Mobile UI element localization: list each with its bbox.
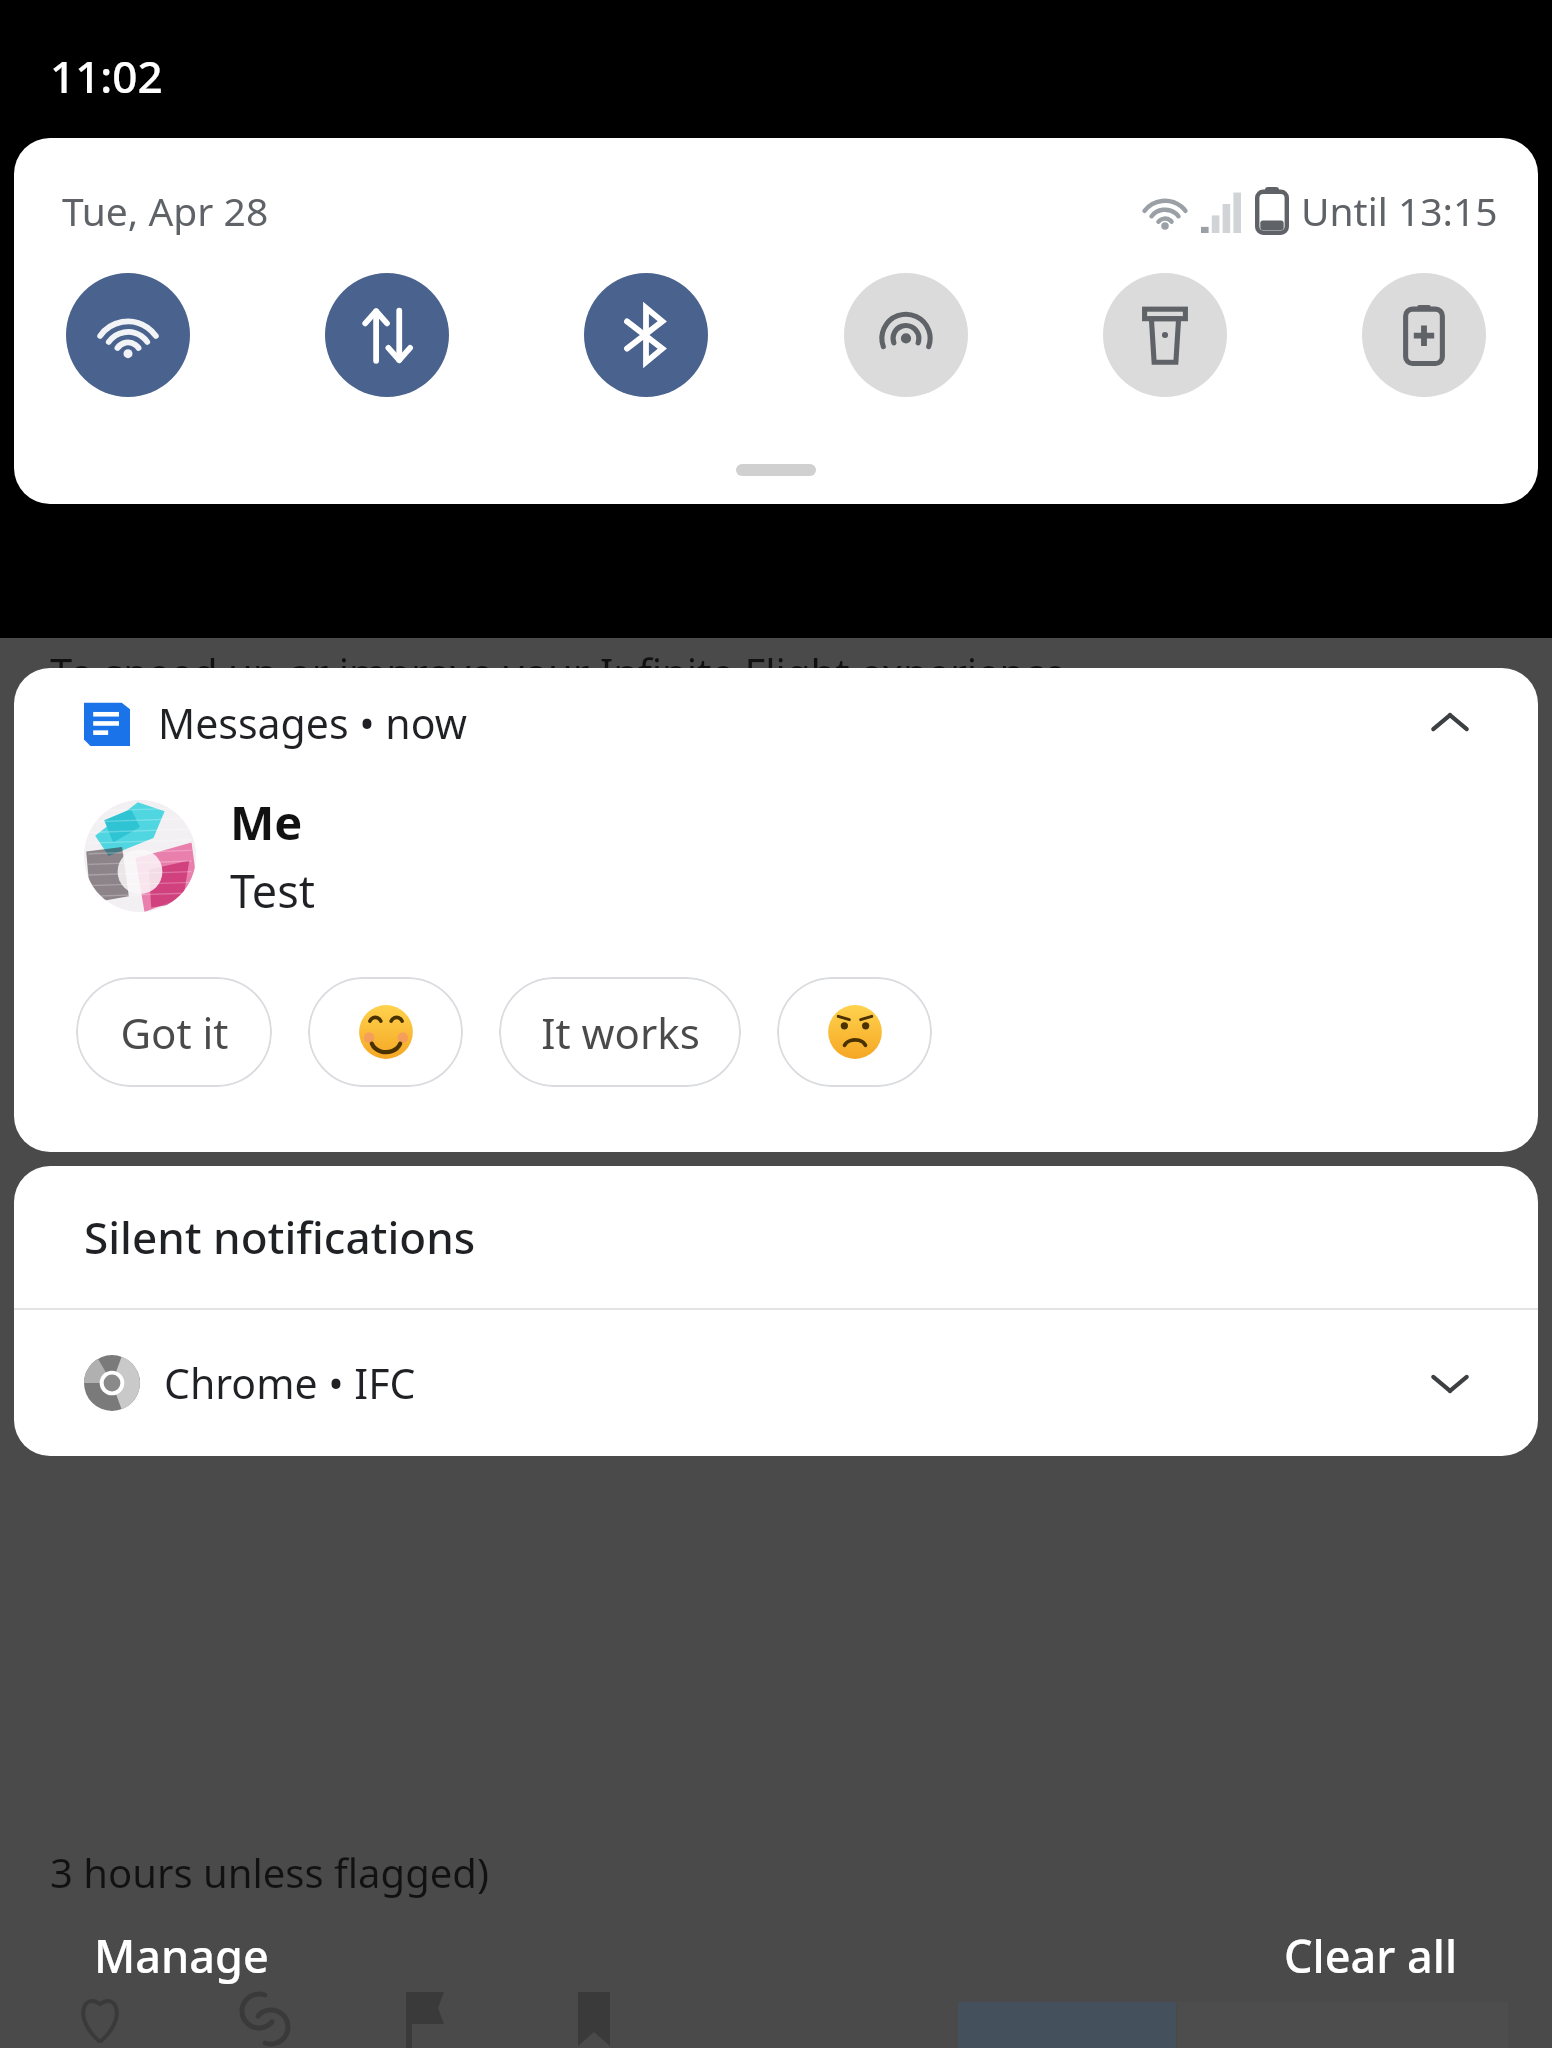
staticText: Clear all — [1284, 1925, 1458, 1986]
button[interactable]: Clear all — [1266, 1915, 1476, 1996]
staticText: To speed up or improve your Infinite Fli… — [50, 645, 1067, 699]
staticText: Tue, Apr 28 — [62, 184, 269, 237]
button[interactable]: Mobile data — [325, 273, 449, 397]
staticText: Chrome • IFC — [164, 1355, 416, 1411]
staticText: Messages • now — [158, 695, 467, 751]
staticText: It works — [541, 1004, 700, 1061]
staticText: 11:02 — [50, 46, 163, 106]
button[interactable]: Flashlight — [1103, 273, 1227, 397]
button[interactable]: Wi-Fi — [66, 273, 190, 397]
button[interactable]: Collapse — [1414, 687, 1486, 759]
staticText: Test — [230, 860, 316, 921]
other: Expand — [1414, 1347, 1486, 1419]
button[interactable]: Emoji reply — [777, 977, 932, 1087]
button[interactable]: Emoji reply — [308, 977, 463, 1087]
button[interactable]: Chrome • IFC — [14, 1310, 1538, 1456]
button[interactable]: It works — [499, 977, 741, 1087]
staticText: Me — [230, 790, 303, 854]
staticText: 3 hours unless flagged) — [50, 1845, 489, 1899]
staticText: Silent notifications — [84, 1207, 476, 1267]
button[interactable]: Battery Saver — [1362, 273, 1486, 397]
button[interactable]: Bluetooth — [584, 273, 708, 397]
button[interactable]: Manage — [76, 1915, 287, 1996]
staticText: Got it — [120, 1004, 229, 1061]
button[interactable]: Silent notifications — [14, 1166, 1538, 1308]
button[interactable]: Hotspot — [844, 273, 968, 397]
button[interactable]: Got it — [76, 977, 272, 1087]
staticText: Until 13:15 — [1301, 184, 1498, 237]
staticText: Manage — [94, 1925, 269, 1986]
